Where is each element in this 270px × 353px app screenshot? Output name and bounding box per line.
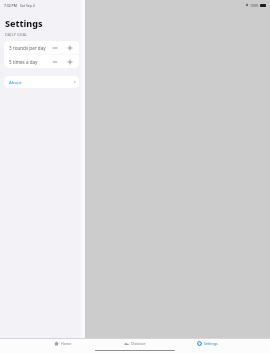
staticText: About — [9, 79, 22, 85]
staticText: Sat Sep 4 — [20, 3, 35, 8]
staticText: Distance — [131, 341, 146, 346]
staticText: 7:32 PM — [4, 3, 17, 8]
staticText: 3 rounds per day — [9, 45, 46, 51]
staticText: Settings — [204, 341, 218, 346]
button[interactable]: About — [4, 76, 79, 88]
button[interactable]: Distance — [99, 339, 171, 348]
staticText: 100% — [250, 3, 259, 8]
staticText: Settings — [5, 17, 43, 29]
staticText: 5 times a day — [9, 59, 38, 65]
button[interactable]: Home — [27, 339, 99, 348]
button[interactable]: Decrease — [50, 43, 59, 52]
button[interactable]: Increase — [65, 43, 74, 52]
button[interactable]: Settings — [171, 339, 243, 348]
staticText: DAILY GOAL — [5, 32, 28, 37]
button[interactable]: Decrease — [50, 57, 59, 66]
staticText: Home — [61, 341, 72, 346]
button[interactable]: Increase — [65, 57, 74, 66]
